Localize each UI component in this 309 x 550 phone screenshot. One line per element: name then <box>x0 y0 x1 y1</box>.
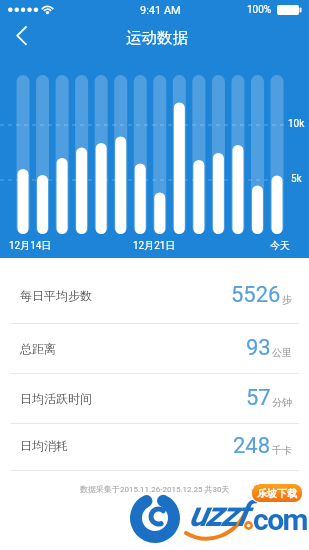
staticText: uzzf <box>189 494 247 535</box>
staticText: 100% <box>247 4 272 16</box>
button[interactable]: 总距离 <box>0 323 309 373</box>
button[interactable]: 乐坡下载 <box>252 484 302 502</box>
button[interactable] <box>0 20 48 58</box>
staticText: 分钟 <box>272 396 292 409</box>
staticText: 千卡 <box>272 444 292 457</box>
staticText: com <box>253 502 308 537</box>
staticText: 步 <box>282 293 292 306</box>
staticText: 公里 <box>272 346 292 359</box>
staticText: 93 <box>246 335 271 361</box>
staticText: 5k <box>291 173 302 185</box>
staticText: 乐坡下载 <box>257 487 297 500</box>
button[interactable]: 日均活跃时间 <box>0 373 309 423</box>
staticText: 248 <box>233 433 271 459</box>
staticText: 57 <box>246 385 271 411</box>
staticText: 日均活跃时间 <box>20 391 92 406</box>
staticText: 总距离 <box>20 341 56 356</box>
staticText: 每日平均步数 <box>20 288 92 303</box>
staticText: 日均消耗 <box>20 438 68 453</box>
staticText: 12月14日 <box>9 239 52 252</box>
button[interactable]: 每日平均步数 <box>0 270 309 320</box>
staticText: 5526 <box>231 282 281 308</box>
staticText: 12月21日 <box>133 239 176 252</box>
staticText: 运动数据 <box>126 28 188 48</box>
staticText: 10k <box>288 118 305 130</box>
button[interactable]: 日均消耗 <box>0 421 309 470</box>
staticText: 今天 <box>270 239 290 252</box>
staticText: 数据采集于2015.11.26-2015.12.25 共30天 <box>80 484 230 494</box>
staticText: 9:41 AM <box>140 4 181 17</box>
